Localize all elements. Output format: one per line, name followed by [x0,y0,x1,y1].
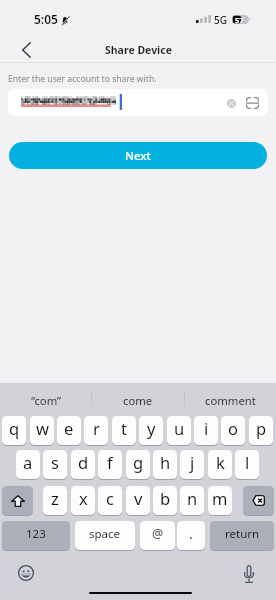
staticText: r [93,417,100,439]
staticText: l [245,451,250,473]
staticText: return [225,526,260,542]
button[interactable]: p [249,416,273,445]
button[interactable]: c [98,486,122,515]
button[interactable]: o [221,416,245,445]
staticText: comment [205,393,256,408]
staticText: x [79,487,88,509]
staticText: 5:05 [34,11,58,27]
staticText: Share Device [105,43,172,57]
button[interactable]: x [71,486,95,515]
button[interactable]: d [71,450,95,479]
staticText: v [134,487,143,509]
staticText: w [36,417,49,439]
button[interactable]: s [43,450,67,479]
button[interactable]: “com” [0,383,92,416]
staticText: o [228,417,238,439]
button[interactable]: t [112,416,136,445]
button[interactable]: r [84,416,108,445]
button[interactable]: 123 [2,521,70,550]
button[interactable]: come [92,383,184,416]
button[interactable]: return [210,521,274,550]
button[interactable]: @ [140,521,175,550]
button[interactable]: g [126,450,150,479]
staticText: i [204,417,209,439]
button[interactable]: f [98,450,122,479]
button[interactable]: b [153,486,177,515]
staticText: m [212,487,228,509]
staticText: t [121,417,127,439]
button[interactable]: q [2,416,26,445]
button[interactable]: h [153,450,177,479]
button[interactable]: i [194,416,218,445]
staticText: Enter the user account to share with. [8,73,157,85]
staticText: . [189,524,193,543]
staticText: c [106,487,114,509]
button[interactable]: Delete [243,486,274,515]
staticText: 5G [214,13,227,27]
staticText: “com” [31,393,62,408]
staticText: k [216,451,225,473]
staticText: come [123,393,153,408]
button[interactable]: Scan QR code [8,89,268,116]
button[interactable]: z [43,486,67,515]
button[interactable]: v [126,486,150,515]
button[interactable]: l [235,450,259,479]
staticText: u [174,417,185,439]
button[interactable]: Scan QR code [243,93,262,112]
staticText: p [256,417,267,439]
staticText: 123 [26,526,46,542]
button[interactable]: j [180,450,204,479]
staticText: f [107,451,113,473]
staticText: space [89,526,121,542]
staticText: n [187,487,198,509]
staticText: g [133,451,144,473]
staticText: e [64,417,74,439]
staticText: d [78,451,89,473]
staticText: h [160,451,171,473]
staticText: q [9,417,20,439]
button[interactable]: m [208,486,232,515]
staticText: j [190,451,195,473]
button[interactable]: k [208,450,232,479]
button[interactable]: Next [9,142,267,169]
button[interactable]: space [75,521,135,550]
button[interactable]: Clear text [223,95,239,111]
staticText: s [51,451,59,473]
button[interactable]: n [180,486,204,515]
button[interactable]: . [177,521,205,550]
staticText: Next [125,148,151,164]
staticText: 57 [235,15,244,25]
staticText: b [160,487,171,509]
staticText: y [147,417,156,439]
button[interactable]: Dictation [237,562,261,586]
button[interactable]: a [16,450,40,479]
button[interactable]: e [57,416,81,445]
button[interactable]: y [139,416,163,445]
staticText: z [51,487,59,509]
button[interactable]: Emoji keyboard [14,561,38,585]
button[interactable]: comment [184,383,276,416]
button[interactable]: w [30,416,54,445]
button[interactable]: Shift [2,486,33,515]
staticText: @ [152,525,164,542]
button[interactable]: Back [12,36,40,64]
button[interactable]: u [167,416,191,445]
staticText: a [23,451,33,473]
